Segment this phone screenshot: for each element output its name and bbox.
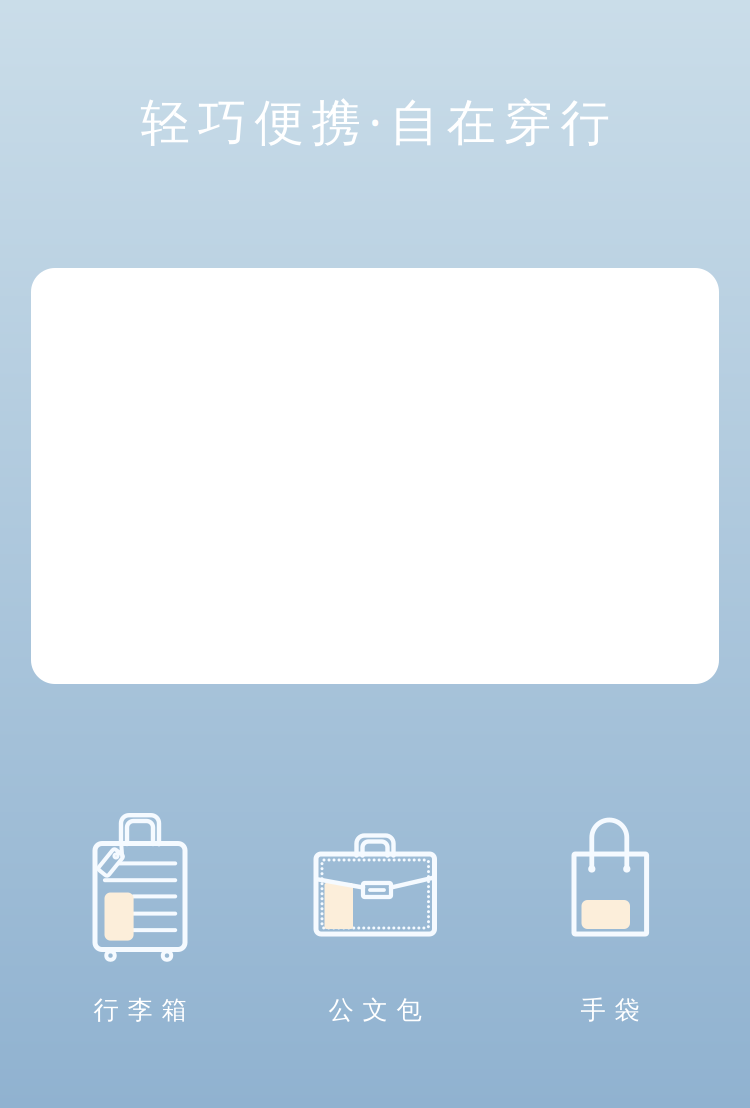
button[interactable]: 公文包 (257, 813, 492, 1021)
staticText: 行李箱 (93, 994, 186, 1025)
button[interactable]: 行李箱 (22, 813, 257, 1021)
staticText: 手袋 (580, 994, 639, 1025)
staticText: 公文包 (328, 994, 421, 1025)
staticText: 轻巧便携·自在穿行 (140, 88, 609, 154)
button[interactable]: 手袋 (492, 813, 727, 1021)
